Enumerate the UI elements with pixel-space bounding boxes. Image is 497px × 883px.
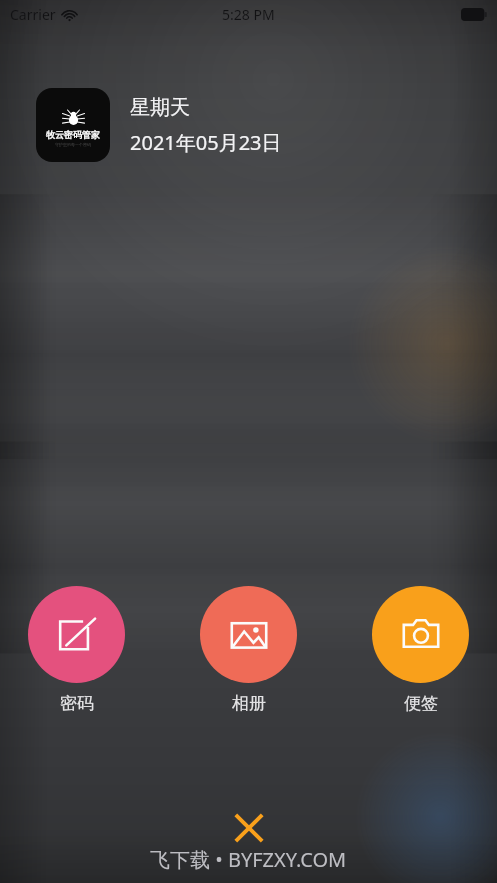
button[interactable]: 关闭 [227, 806, 271, 850]
staticText: 相册 [232, 693, 266, 714]
staticText: 星期天 [130, 95, 190, 120]
staticText: 密码 [60, 693, 94, 714]
staticText: 飞下载 • BYFZXY.COM [150, 846, 347, 873]
staticText: 牧云密码管家 [46, 129, 100, 140]
button[interactable]: 牧云密码管家 [36, 88, 282, 162]
button[interactable]: 便签 [372, 586, 469, 714]
staticText: Carrier [10, 5, 56, 24]
staticText: 守护您的每一个密码 [55, 142, 91, 147]
button[interactable]: 密码 [28, 586, 125, 714]
staticText: 便签 [404, 693, 438, 714]
button[interactable]: 相册 [200, 586, 297, 714]
staticText: 2021年05月23日 [130, 129, 282, 156]
staticText: 5:28 PM [222, 5, 275, 24]
